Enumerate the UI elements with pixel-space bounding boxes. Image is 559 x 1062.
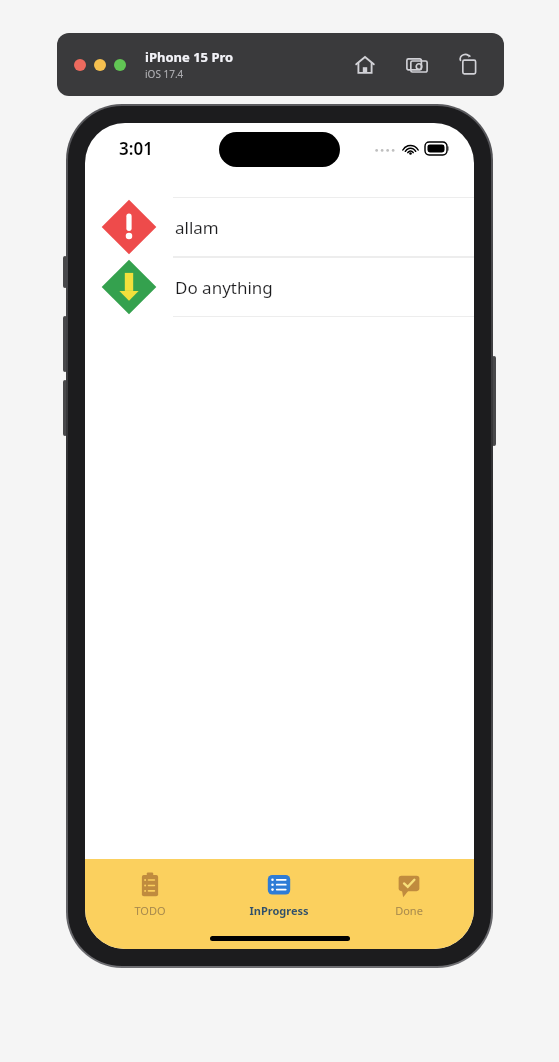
button[interactable]: Do anything: [85, 257, 474, 317]
button[interactable]: Rotate: [456, 52, 482, 78]
staticText: TODO: [134, 903, 166, 918]
staticText: InProgress: [249, 903, 309, 918]
staticText: iOS 17.4: [145, 67, 184, 81]
button[interactable]: Maximize: [114, 59, 126, 71]
staticText: 3:01: [119, 137, 153, 160]
staticText: allam: [175, 216, 219, 239]
staticText: iPhone 15 Pro: [145, 48, 234, 66]
button[interactable]: InProgress: [214, 869, 344, 920]
button[interactable]: Close: [74, 59, 86, 71]
button[interactable]: allam: [85, 197, 474, 257]
button[interactable]: Done: [344, 869, 474, 920]
staticText: Done: [395, 903, 423, 918]
staticText: Do anything: [175, 276, 273, 299]
button[interactable]: Screenshot: [404, 52, 430, 78]
button[interactable]: Minimize: [94, 59, 106, 71]
button[interactable]: TODO: [85, 869, 214, 920]
button[interactable]: Home: [352, 52, 378, 78]
